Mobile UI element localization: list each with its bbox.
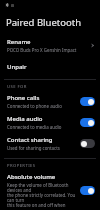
button[interactable]: Switch off [80,139,95,148]
button[interactable]: Switch on [80,118,95,127]
staticText: Rename [7,38,31,46]
button[interactable]: Rename [0,35,100,56]
button[interactable]: Contact sharing [0,133,100,154]
button[interactable]: Phone calls [0,91,100,112]
staticText: Contact sharing [7,136,53,144]
staticText: Connected to phone audio [7,103,62,109]
staticText: Paired Bluetooth device [6,16,99,29]
staticText: POCO Buds Pro X Genshin Impact [7,47,77,53]
button[interactable]: Switch on [80,186,95,195]
staticText: Keep the volume of Bluetooth devices and… [7,182,77,207]
staticText: USE FOR [7,84,27,90]
staticText: Media audio [7,115,43,123]
staticText: Absolute volume [7,173,56,181]
staticText: Unpair [7,63,27,71]
staticText: Phone calls [7,94,40,102]
button[interactable]: Media audio [0,112,100,133]
staticText: Used for sharing contacts [7,145,60,151]
staticText: PROPERTIES [7,163,36,169]
button[interactable]: Unpair [0,60,100,74]
button[interactable]: Absolute volume [0,170,100,210]
staticText: Connected to media audio [7,124,62,130]
button[interactable]: Switch on [80,97,95,106]
